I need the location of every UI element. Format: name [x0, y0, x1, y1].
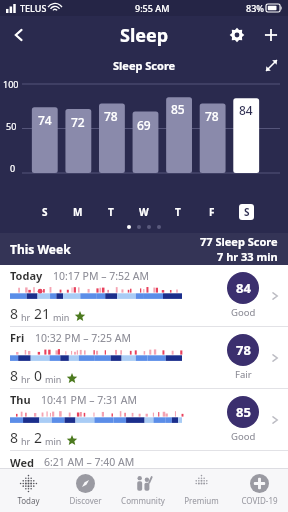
button[interactable]: Wed — [0, 451, 288, 468]
staticText: Sleep — [120, 23, 169, 48]
staticText: T — [175, 205, 181, 219]
button[interactable]: Premium — [172, 468, 230, 512]
staticText: M — [73, 205, 83, 219]
staticText: Today — [10, 268, 43, 283]
staticText: min — [45, 435, 62, 447]
staticText: T — [108, 205, 114, 219]
staticText: 85 — [171, 101, 185, 117]
staticText: W — [139, 205, 149, 219]
staticText: 2 — [34, 428, 43, 447]
button[interactable]: Expand chart — [260, 54, 282, 76]
staticText: 74 — [38, 112, 52, 128]
staticText: S — [42, 205, 48, 219]
staticText: Premium — [184, 495, 219, 506]
staticText: Fri — [10, 330, 25, 345]
staticText: 0 — [10, 162, 16, 174]
button[interactable]: Settings — [220, 18, 254, 52]
staticText: 78 — [104, 108, 118, 124]
button[interactable]: Fri — [0, 327, 288, 388]
staticText: 9:55 AM — [135, 2, 170, 14]
staticText: 100 — [3, 78, 19, 90]
staticText: This Week — [10, 241, 71, 257]
staticText: 10:41 PM – 7:31 AM — [41, 393, 137, 407]
staticText: F — [209, 205, 215, 219]
staticText: 69 — [137, 117, 151, 133]
button[interactable]: Community — [114, 468, 172, 512]
staticText: 21 — [34, 304, 51, 323]
button[interactable]: Today — [0, 468, 57, 512]
staticText: 10:32 PM – 7:25 AM — [35, 331, 131, 345]
staticText: 7 hr 33 min — [217, 249, 278, 264]
button[interactable]: Thu — [0, 389, 288, 450]
staticText: 85 — [236, 403, 251, 421]
staticText: min — [53, 311, 70, 323]
staticText: 8 — [10, 366, 19, 385]
staticText: min — [45, 373, 62, 385]
staticText: 84 — [239, 102, 253, 118]
staticText: Good — [231, 306, 256, 319]
staticText: 0 — [34, 366, 43, 385]
staticText: 77 Sleep Score — [200, 234, 278, 249]
staticText: 83% — [246, 2, 264, 14]
staticText: 8 — [10, 428, 19, 447]
button[interactable]: COVID-19 — [230, 468, 288, 512]
staticText: 50 — [6, 120, 17, 132]
staticText: Community — [121, 495, 165, 506]
staticText: 72 — [71, 114, 85, 130]
staticText: Discover — [69, 495, 102, 506]
staticText: S — [244, 205, 250, 219]
staticText: Wed — [10, 455, 34, 468]
staticText: 6:21 AM – 7:40 AM — [44, 455, 135, 468]
staticText: Today — [17, 495, 40, 506]
staticText: Thu — [10, 392, 31, 407]
staticText: hr — [21, 311, 31, 323]
staticText: TELUS — [20, 2, 47, 14]
staticText: 78 — [205, 108, 219, 124]
staticText: Sleep Score — [113, 58, 176, 73]
staticText: Fair — [235, 368, 252, 381]
staticText: 8 — [10, 304, 19, 323]
staticText: hr — [21, 435, 31, 447]
button[interactable]: Add — [254, 18, 288, 52]
staticText: 84 — [236, 279, 251, 297]
staticText: Good — [231, 430, 256, 443]
staticText: 10:17 PM – 7:52 AM — [53, 269, 149, 283]
staticText: COVID-19 — [241, 495, 278, 506]
button[interactable]: Today — [0, 265, 288, 326]
button[interactable]: Back — [0, 16, 38, 54]
staticText: 78 — [236, 341, 251, 359]
button[interactable]: Discover — [57, 468, 114, 512]
button[interactable]: This Week — [0, 233, 288, 265]
staticText: hr — [21, 373, 31, 385]
